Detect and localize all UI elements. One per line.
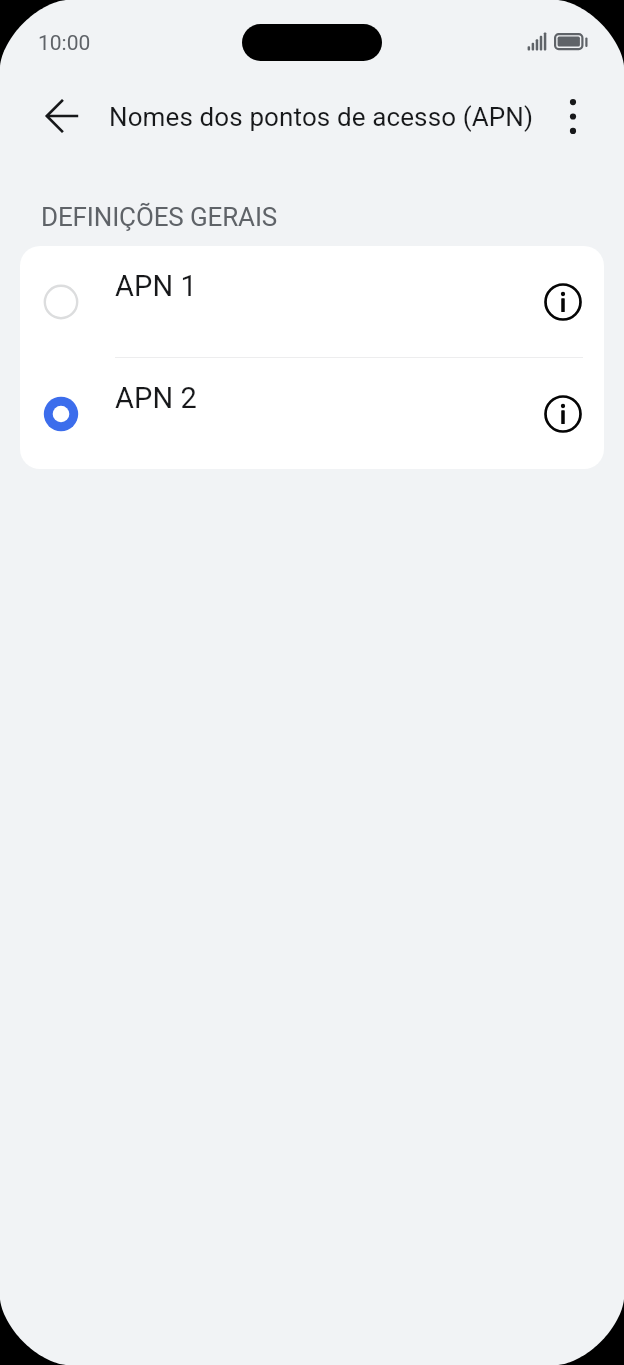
- button[interactable]: APN 1: [20, 246, 604, 357]
- button[interactable]: More options: [549, 92, 597, 140]
- staticText: Nomes dos pontos de acesso (APN): [109, 102, 534, 132]
- button[interactable]: About APN 2: [533, 384, 593, 444]
- staticText: APN 1: [115, 269, 197, 303]
- staticText: APN 2: [115, 381, 197, 415]
- button[interactable]: APN 2: [20, 358, 604, 469]
- staticText: DEFINIÇÕES GERAIS: [41, 202, 278, 232]
- staticText: 10:00: [38, 31, 91, 56]
- button[interactable]: About APN 1: [533, 272, 593, 332]
- button[interactable]: Back: [38, 92, 86, 140]
